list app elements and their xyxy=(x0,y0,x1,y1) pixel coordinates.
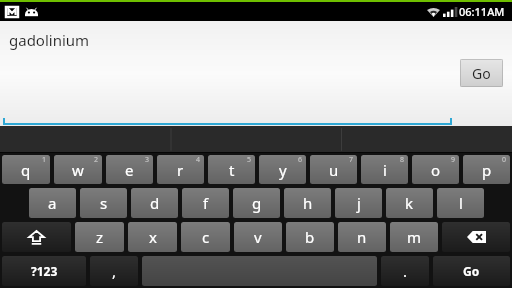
staticText: p xyxy=(482,160,492,180)
staticText: 06:11AM xyxy=(459,4,505,19)
staticText: 2 xyxy=(94,155,99,165)
staticText: Go xyxy=(472,64,491,83)
button[interactable]: r xyxy=(157,155,204,184)
staticText: n xyxy=(357,227,367,247)
staticText: v xyxy=(254,227,262,247)
staticText: x xyxy=(149,227,157,247)
staticText: gadolinium xyxy=(9,30,90,50)
button[interactable]: k xyxy=(386,188,433,218)
button[interactable]: s xyxy=(80,188,127,218)
staticText: u xyxy=(329,160,339,180)
staticText: . xyxy=(403,261,408,281)
button[interactable]: h xyxy=(284,188,331,218)
staticText: w xyxy=(72,160,84,180)
button[interactable]: j xyxy=(335,188,382,218)
staticText: g xyxy=(252,193,262,213)
staticText: ?123 xyxy=(31,263,58,279)
button[interactable]: d xyxy=(131,188,178,218)
staticText: q xyxy=(21,160,31,180)
staticText: a xyxy=(48,193,57,213)
staticText: 7 xyxy=(349,155,354,165)
button[interactable]: o xyxy=(412,155,459,184)
button[interactable]: f xyxy=(182,188,229,218)
staticText: d xyxy=(150,193,160,213)
button[interactable]: m xyxy=(390,222,438,252)
staticText: m xyxy=(407,227,422,247)
staticText: b xyxy=(305,227,315,247)
staticText: l xyxy=(459,193,463,213)
staticText: Go xyxy=(463,263,480,279)
staticText: i xyxy=(383,160,387,180)
staticText: k xyxy=(405,193,414,213)
button[interactable]: Go xyxy=(460,59,503,87)
button[interactable]: a xyxy=(29,188,76,218)
button[interactable]: y xyxy=(259,155,306,184)
button[interactable]: Backspace xyxy=(442,222,510,252)
staticText: s xyxy=(100,193,108,213)
button[interactable]: z xyxy=(75,222,124,252)
button[interactable]: c xyxy=(181,222,230,252)
staticText: 9 xyxy=(451,155,456,165)
staticText: 1 xyxy=(42,155,47,165)
staticText: 3 xyxy=(145,155,150,165)
staticText: o xyxy=(431,160,441,180)
staticText: e xyxy=(125,160,134,180)
button[interactable]: v xyxy=(234,222,282,252)
button[interactable]: q xyxy=(2,155,50,184)
staticText: , xyxy=(112,261,117,281)
button[interactable]: g xyxy=(233,188,280,218)
button[interactable]: ?123 xyxy=(2,256,86,286)
button[interactable]: l xyxy=(437,188,484,218)
staticText: r xyxy=(177,160,184,180)
button[interactable]: Shift xyxy=(2,222,71,252)
staticText: 8 xyxy=(400,155,405,165)
button[interactable]: , xyxy=(90,256,138,286)
button[interactable]: Go xyxy=(433,256,510,286)
staticText: 6 xyxy=(298,155,303,165)
button[interactable]: n xyxy=(338,222,386,252)
button[interactable]: . xyxy=(381,256,429,286)
staticText: f xyxy=(203,193,209,213)
button[interactable]: x xyxy=(128,222,177,252)
staticText: t xyxy=(229,160,235,180)
staticText: h xyxy=(303,193,313,213)
button[interactable]: i xyxy=(361,155,408,184)
staticText: 5 xyxy=(247,155,252,165)
staticText: y xyxy=(279,160,287,180)
button[interactable]: b xyxy=(286,222,334,252)
staticText: z xyxy=(96,227,104,247)
staticText: c xyxy=(202,227,210,247)
staticText: 4 xyxy=(196,155,201,165)
staticText: 0 xyxy=(502,155,507,165)
button[interactable]: w xyxy=(54,155,102,184)
button[interactable]: p xyxy=(463,155,510,184)
button[interactable]: e xyxy=(106,155,153,184)
button[interactable]: t xyxy=(208,155,255,184)
button[interactable]: u xyxy=(310,155,357,184)
button[interactable] xyxy=(142,256,377,286)
staticText: j xyxy=(357,193,361,213)
